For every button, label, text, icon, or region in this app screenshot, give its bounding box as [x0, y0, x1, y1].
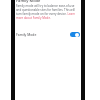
staticText: Family Mode — [16, 32, 37, 37]
staticText: Family mode will try to balance ease-of-… — [16, 4, 79, 20]
staticText: Family Mode — [16, 0, 41, 3]
button[interactable]: Family Mode — [0, 30, 100, 39]
